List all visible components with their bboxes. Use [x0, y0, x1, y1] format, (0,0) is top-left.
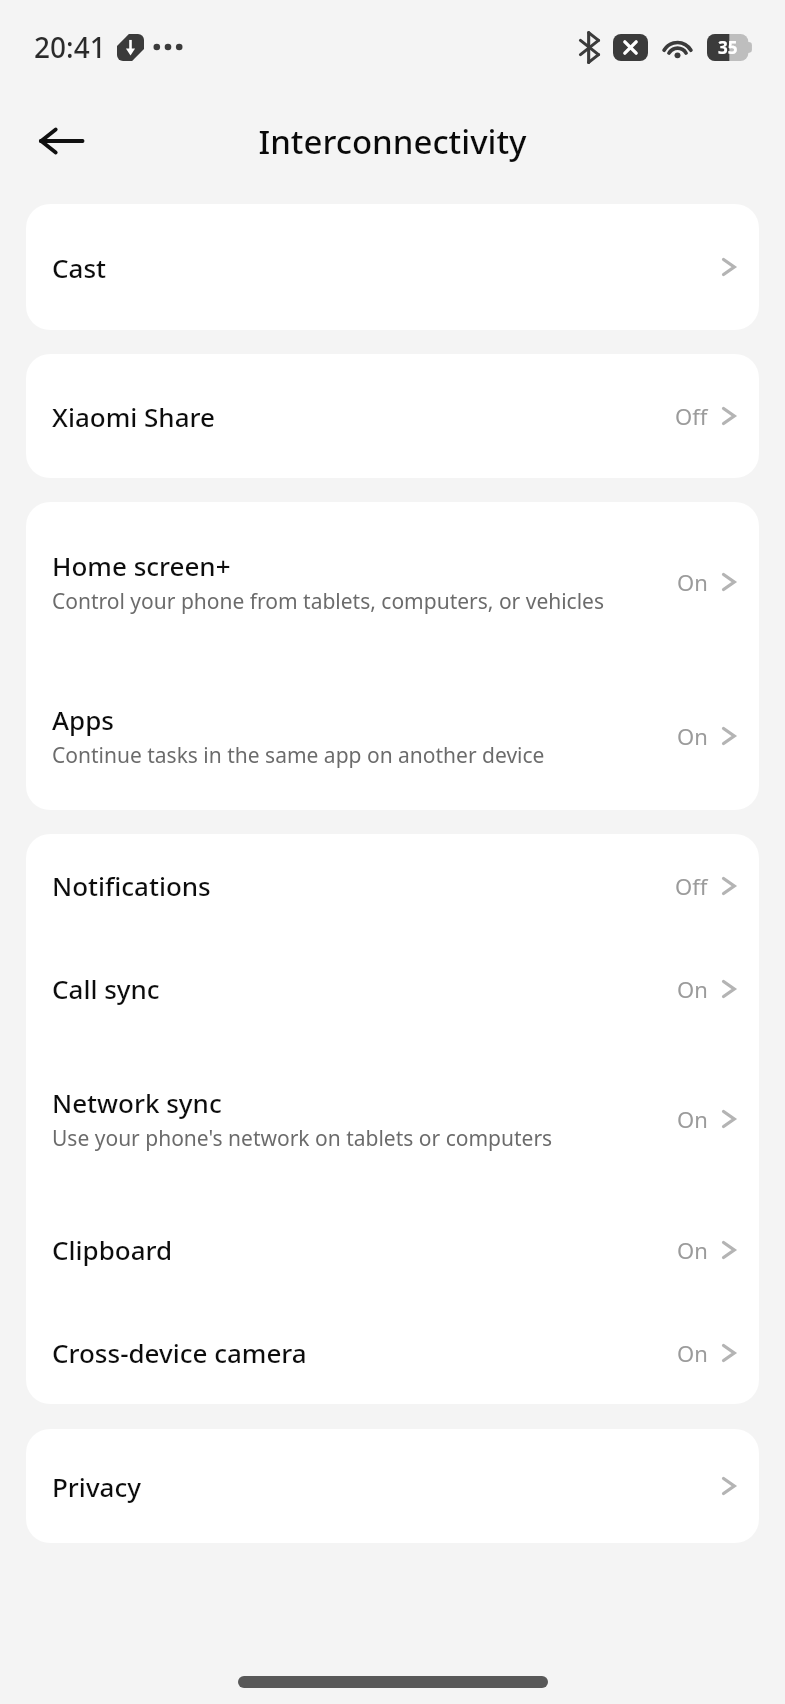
staticText: Clipboard: [52, 1232, 173, 1267]
button[interactable]: Back: [32, 112, 90, 170]
staticText: On: [677, 974, 708, 1004]
button[interactable]: Notifications: [26, 834, 759, 937]
staticText: Off: [675, 871, 708, 901]
staticText: On: [677, 1338, 708, 1368]
staticText: On: [677, 721, 708, 751]
staticText: Use your phone's network on tablets or c…: [52, 1124, 553, 1153]
button[interactable]: Privacy: [26, 1429, 759, 1543]
button[interactable]: Apps: [26, 662, 759, 810]
staticText: On: [677, 1104, 708, 1134]
staticText: 35: [718, 36, 738, 59]
staticText: Apps: [52, 702, 114, 737]
staticText: Interconnectivity: [258, 119, 527, 164]
button[interactable]: Network sync: [26, 1040, 759, 1198]
button[interactable]: Clipboard: [26, 1198, 759, 1301]
button[interactable]: Cross-device camera: [26, 1301, 759, 1404]
button[interactable]: Cast: [26, 204, 759, 330]
staticText: On: [677, 567, 708, 597]
staticText: Notifications: [52, 868, 211, 903]
staticText: Control your phone from tablets, compute…: [52, 587, 605, 616]
staticText: Call sync: [52, 971, 160, 1006]
staticText: On: [677, 1235, 708, 1265]
staticText: Continue tasks in the same app on anothe…: [52, 741, 545, 770]
staticText: Home screen+: [52, 548, 231, 583]
button[interactable]: Call sync: [26, 937, 759, 1040]
button[interactable]: Home screen+: [26, 502, 759, 662]
staticText: Xiaomi Share: [52, 399, 215, 434]
staticText: Cast: [52, 250, 106, 285]
staticText: Off: [675, 401, 708, 431]
button[interactable]: Xiaomi Share: [26, 354, 759, 478]
staticText: Cross-device camera: [52, 1335, 307, 1370]
staticText: Privacy: [52, 1469, 141, 1504]
staticText: Network sync: [52, 1085, 222, 1120]
staticText: 20:41: [34, 28, 106, 66]
